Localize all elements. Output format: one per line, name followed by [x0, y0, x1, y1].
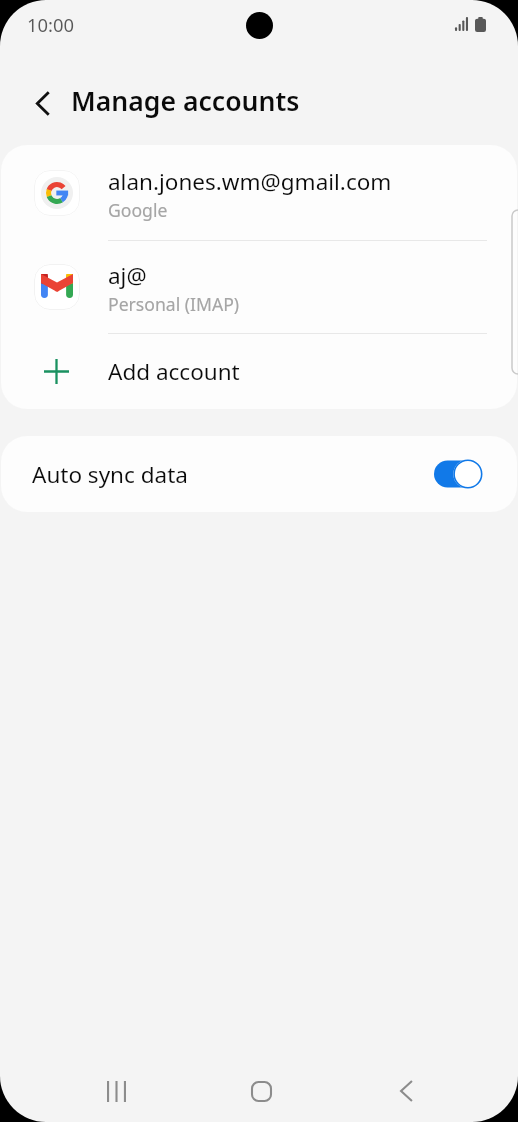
button[interactable]: Back	[376, 1061, 436, 1121]
button[interactable]: Navigate up	[20, 81, 65, 126]
staticText: aj@	[108, 260, 147, 291]
staticText: 10:00	[27, 12, 75, 37]
staticText: Auto sync data	[32, 459, 188, 490]
button[interactable]: aj@	[1, 240, 517, 333]
staticText: Personal (IMAP)	[108, 292, 240, 316]
staticText: alan.jones.wm@gmail.com	[108, 166, 392, 197]
button[interactable]: Home	[231, 1061, 291, 1121]
button[interactable]: Auto sync data	[1, 436, 517, 512]
button[interactable]: alan.jones.wm@gmail.com	[1, 145, 517, 240]
staticText: Google	[108, 198, 168, 222]
button[interactable]: Add account	[1, 333, 517, 409]
staticText: Manage accounts	[71, 83, 300, 119]
staticText: Add account	[108, 356, 240, 387]
button[interactable]: Recent apps	[86, 1061, 146, 1121]
